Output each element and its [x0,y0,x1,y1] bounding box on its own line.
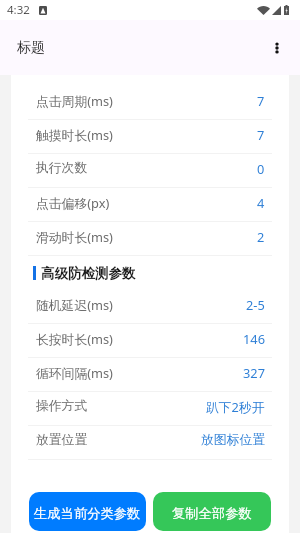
staticText: 循环间隔(ms) [36,364,113,381]
button[interactable]: More options [260,31,294,65]
staticText: 点击周期(ms) [36,92,113,109]
staticText: 327 [243,364,265,381]
button[interactable]: 生成当前分类参数 [29,492,146,531]
staticText: 4:32 [7,2,30,18]
button[interactable]: 放置位置 [11,426,289,460]
staticText: 触摸时长(ms) [36,126,113,143]
button[interactable]: 复制全部参数 [153,492,271,531]
staticText: 高级防检测参数 [41,265,136,282]
button[interactable]: 随机延迟(ms) [11,290,289,324]
button[interactable]: 点击偏移(px) [11,188,289,222]
staticText: 7 [257,126,265,143]
staticText: 生成当前分类参数 [34,505,141,522]
button[interactable]: 滑动时长(ms) [11,222,289,256]
staticText: 2-5 [246,296,265,313]
staticText: 执行次数 [36,160,88,176]
staticText: 点击偏移(px) [36,194,110,211]
staticText: 随机延迟(ms) [36,296,113,313]
button[interactable]: 循环间隔(ms) [11,358,289,392]
staticText: 长按时长(ms) [36,330,113,347]
staticText: 趴下2秒开 [206,398,265,415]
button[interactable]: 触摸时长(ms) [11,120,289,154]
staticText: 放置位置 [36,432,88,448]
button[interactable]: 长按时长(ms) [11,324,289,358]
staticText: 146 [243,330,265,347]
button[interactable]: 操作方式 [11,392,289,426]
button[interactable]: 执行次数 [11,154,289,188]
staticText: 滑动时长(ms) [36,228,113,245]
staticText: 2 [257,228,265,245]
staticText: 复制全部参数 [172,505,252,522]
staticText: 标题 [17,39,45,57]
staticText: 放图标位置 [201,432,265,448]
button[interactable]: 点击周期(ms) [11,86,289,120]
staticText: 4 [257,194,265,211]
staticText: 0 [257,160,265,177]
staticText: 7 [257,92,265,109]
staticText: 操作方式 [36,398,88,414]
